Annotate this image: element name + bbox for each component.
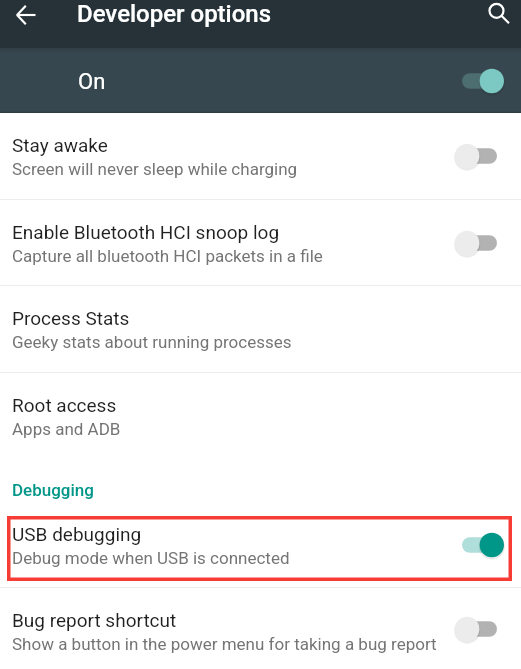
staticText: Root access [12,394,117,416]
staticText: Show a button in the power menu for taki… [12,634,437,654]
staticText: Capture all bluetooth HCI packets in a f… [12,246,323,266]
button[interactable]: Root access [0,373,521,459]
button[interactable]: Enable Bluetooth HCI snoop log [0,200,521,285]
staticText: On [78,69,106,95]
staticText: Debugging [12,480,94,500]
button[interactable]: Navigate up [0,0,48,29]
staticText: Apps and ADB [12,419,121,439]
staticText: Screen will never sleep while charging [12,159,298,179]
button[interactable]: USB debugging [0,510,521,587]
staticText: Stay awake [12,134,108,156]
staticText: Developer options [77,0,272,28]
staticText: Debug mode when USB is connected [12,548,290,568]
button[interactable]: Bug report shortcut [0,588,521,669]
staticText: Process Stats [12,307,130,329]
button[interactable]: Search [473,0,521,29]
staticText: Geeky stats about running processes [12,332,292,352]
staticText: Enable Bluetooth HCI snoop log [12,221,280,243]
button[interactable]: Process Stats [0,286,521,372]
staticText: Bug report shortcut [12,609,177,631]
staticText: USB debugging [12,523,142,545]
button[interactable]: On [0,48,521,113]
button[interactable]: Stay awake [0,113,521,199]
